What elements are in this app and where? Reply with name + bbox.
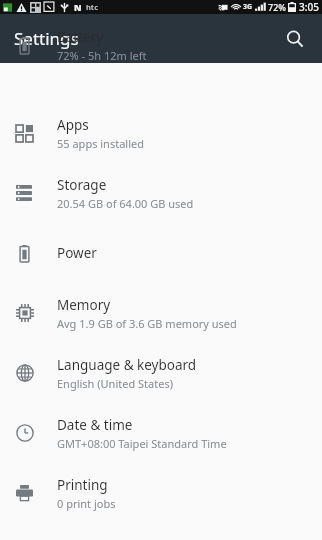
- staticText: 0 print jobs: [57, 496, 116, 511]
- staticText: 55 apps installed: [57, 136, 144, 151]
- staticText: N: [74, 1, 82, 13]
- button[interactable]: Language & keyboard: [0, 343, 322, 403]
- staticText: 3:05: [299, 0, 319, 14]
- staticText: htc: [86, 2, 98, 12]
- staticText: Printing: [57, 476, 108, 494]
- button[interactable]: Storage: [0, 163, 322, 223]
- button[interactable]: Search: [276, 20, 314, 58]
- staticText: GMT+08:00 Taipei Standard Time: [57, 436, 227, 451]
- button[interactable]: Memory: [0, 283, 322, 343]
- button[interactable]: Date & time: [0, 403, 322, 463]
- staticText: 72% - 5h 12m left: [57, 48, 147, 63]
- staticText: Storage: [57, 176, 107, 194]
- staticText: English (United States): [57, 376, 173, 391]
- button[interactable]: Power: [0, 223, 322, 283]
- staticText: 20.54 GB of 64.00 GB used: [57, 196, 194, 211]
- staticText: Apps: [57, 116, 89, 134]
- staticText: Date & time: [57, 416, 133, 434]
- staticText: Avg 1.9 GB of 3.6 GB memory used: [57, 316, 237, 331]
- button[interactable]: Printing: [0, 463, 322, 523]
- button[interactable]: Apps: [0, 103, 322, 163]
- staticText: Battery: [57, 28, 104, 46]
- staticText: Memory: [57, 296, 111, 314]
- staticText: Power: [57, 244, 97, 262]
- button[interactable]: Battery: [0, 25, 322, 65]
- staticText: Language & keyboard: [57, 356, 197, 374]
- staticText: 3G: [243, 2, 253, 12]
- staticText: 72%: [268, 1, 286, 13]
- staticText: Settings: [14, 27, 79, 50]
